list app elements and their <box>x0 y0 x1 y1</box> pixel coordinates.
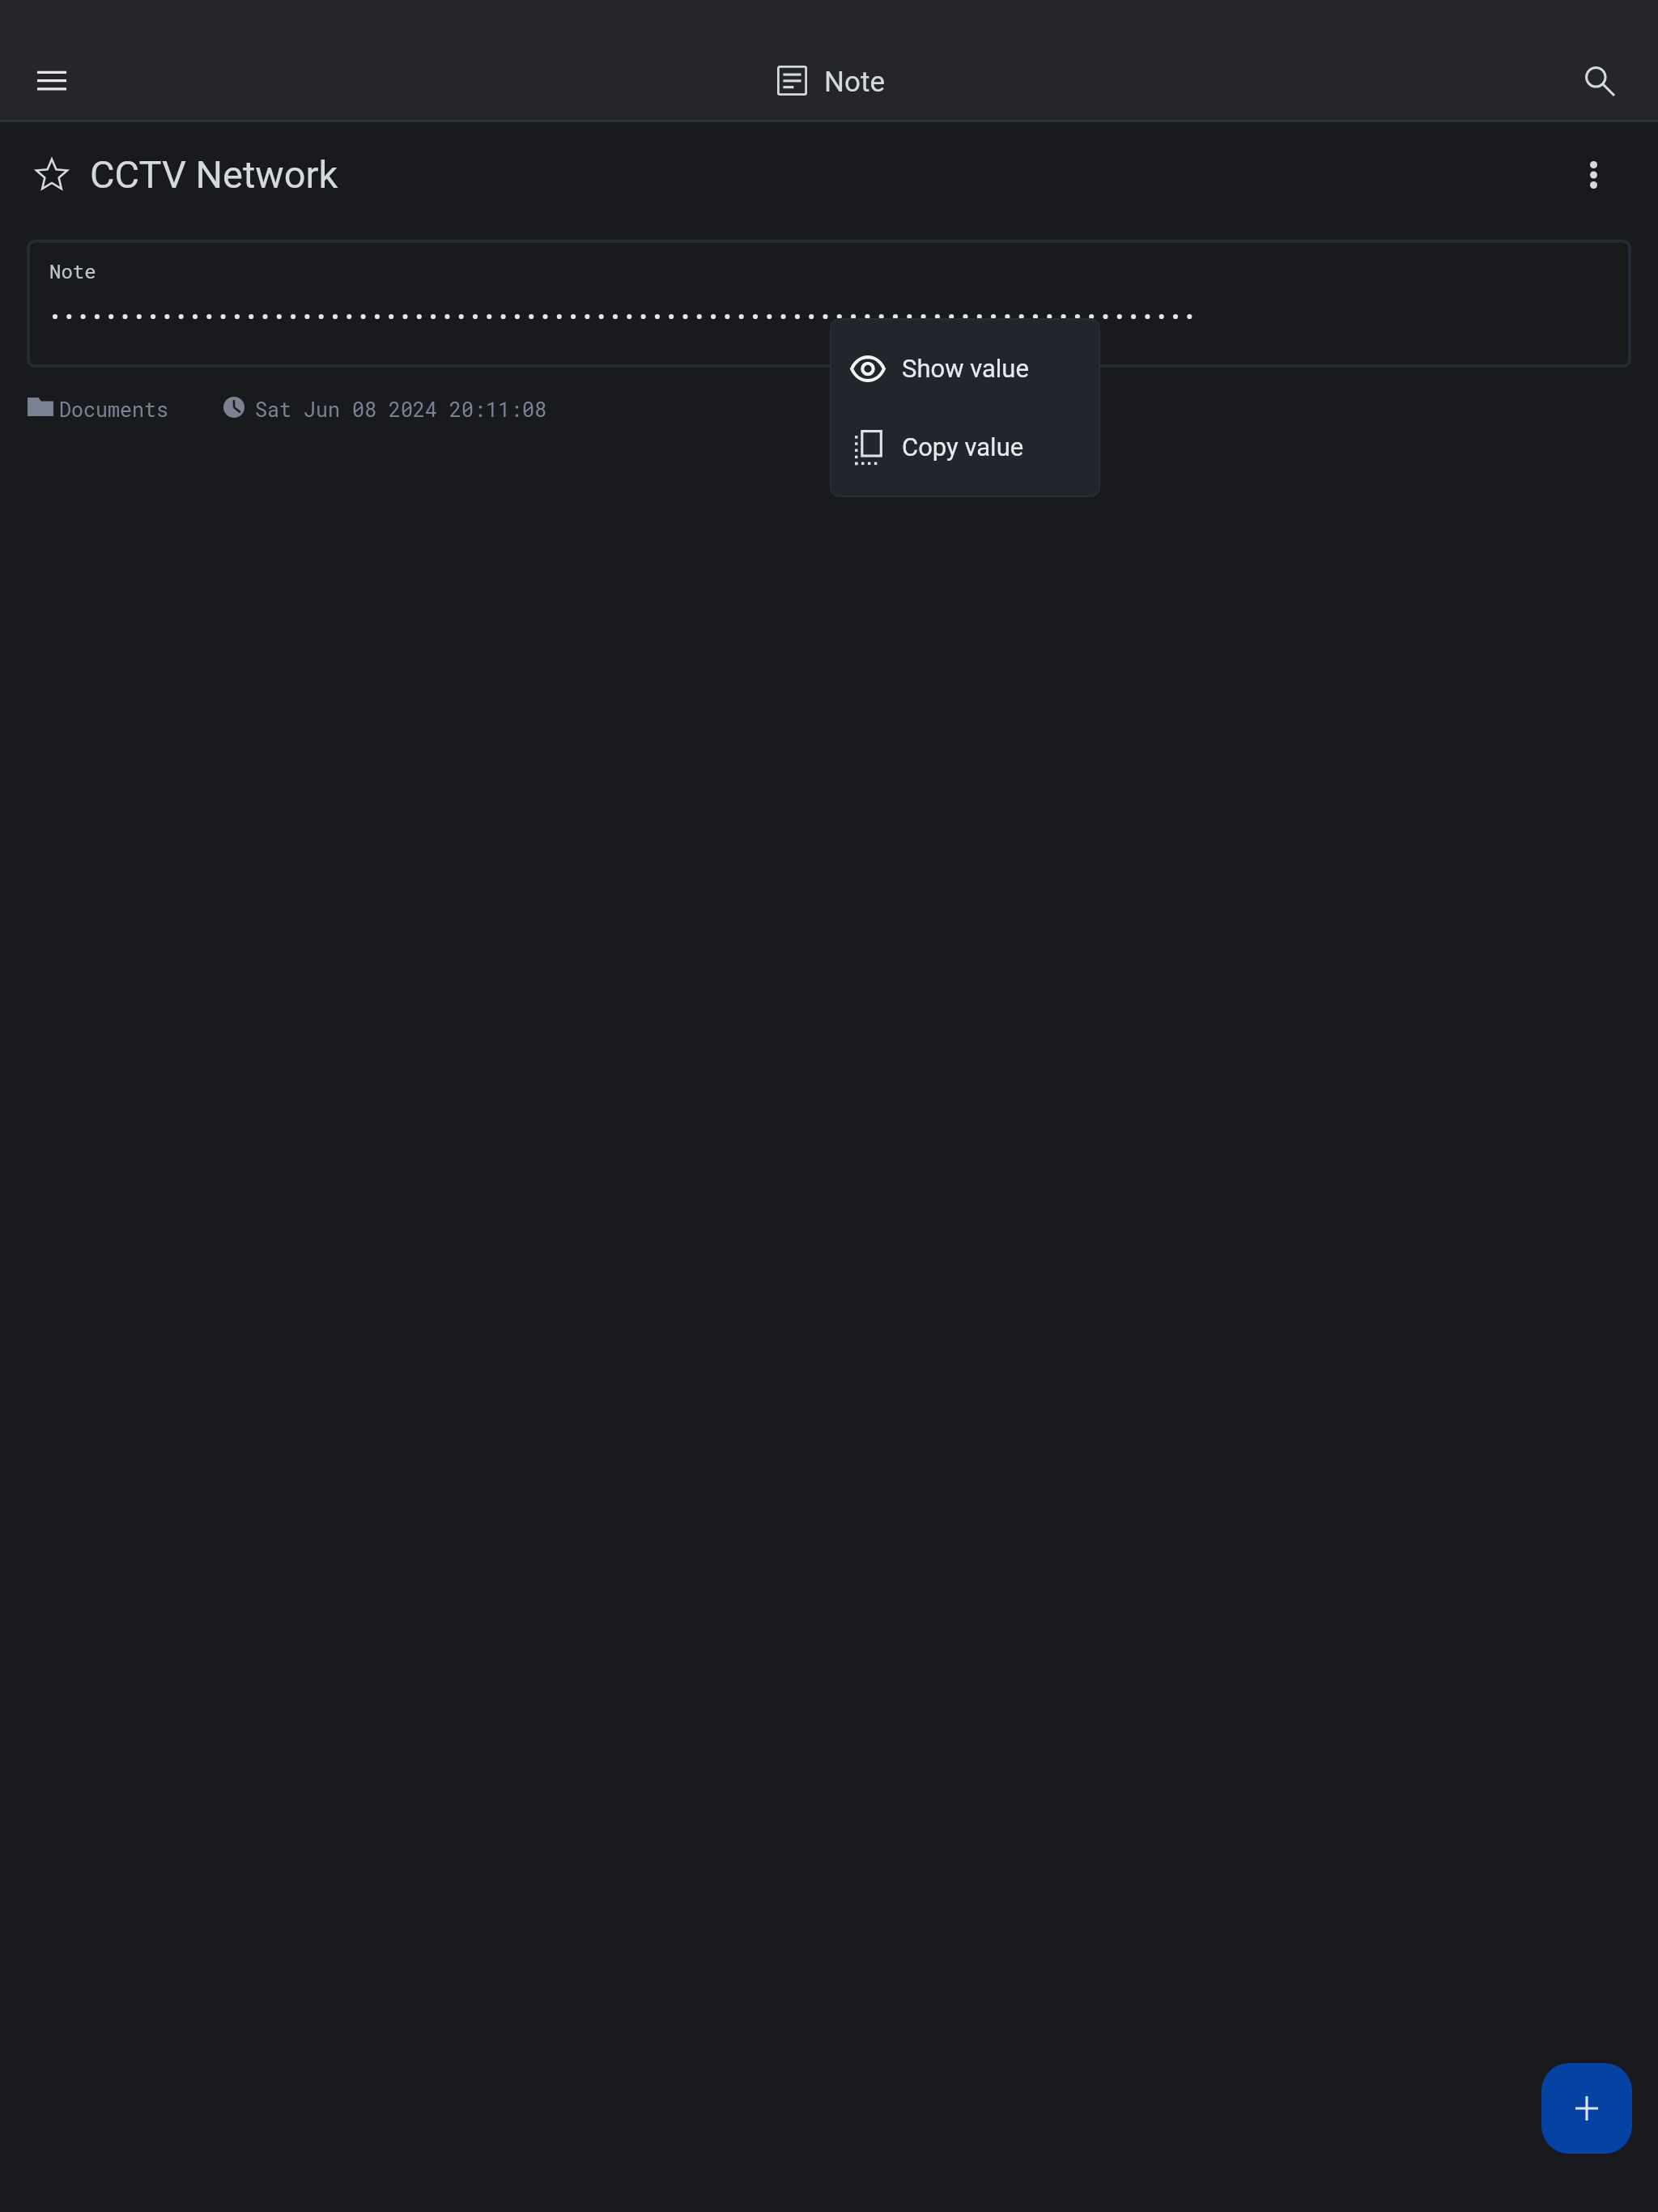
staticText: Sat Jun 08 2024 20:11:08 <box>255 396 547 423</box>
button[interactable]: Navigation menu <box>15 44 89 118</box>
button[interactable]: Favorite <box>15 139 89 214</box>
staticText: Show value <box>902 354 1029 383</box>
staticText: Documents <box>59 396 169 423</box>
button[interactable]: More options <box>1556 138 1630 212</box>
button[interactable]: Search <box>1563 45 1638 119</box>
staticText: Copy value <box>902 432 1024 462</box>
button[interactable]: Add <box>1541 2063 1632 2154</box>
staticText: Note <box>49 258 96 284</box>
button[interactable]: Copy value <box>830 419 1100 474</box>
button[interactable]: Note <box>27 240 1631 368</box>
staticText: Note <box>824 66 885 99</box>
button[interactable]: Show value <box>830 341 1100 396</box>
staticText: CCTV Network <box>90 152 338 197</box>
